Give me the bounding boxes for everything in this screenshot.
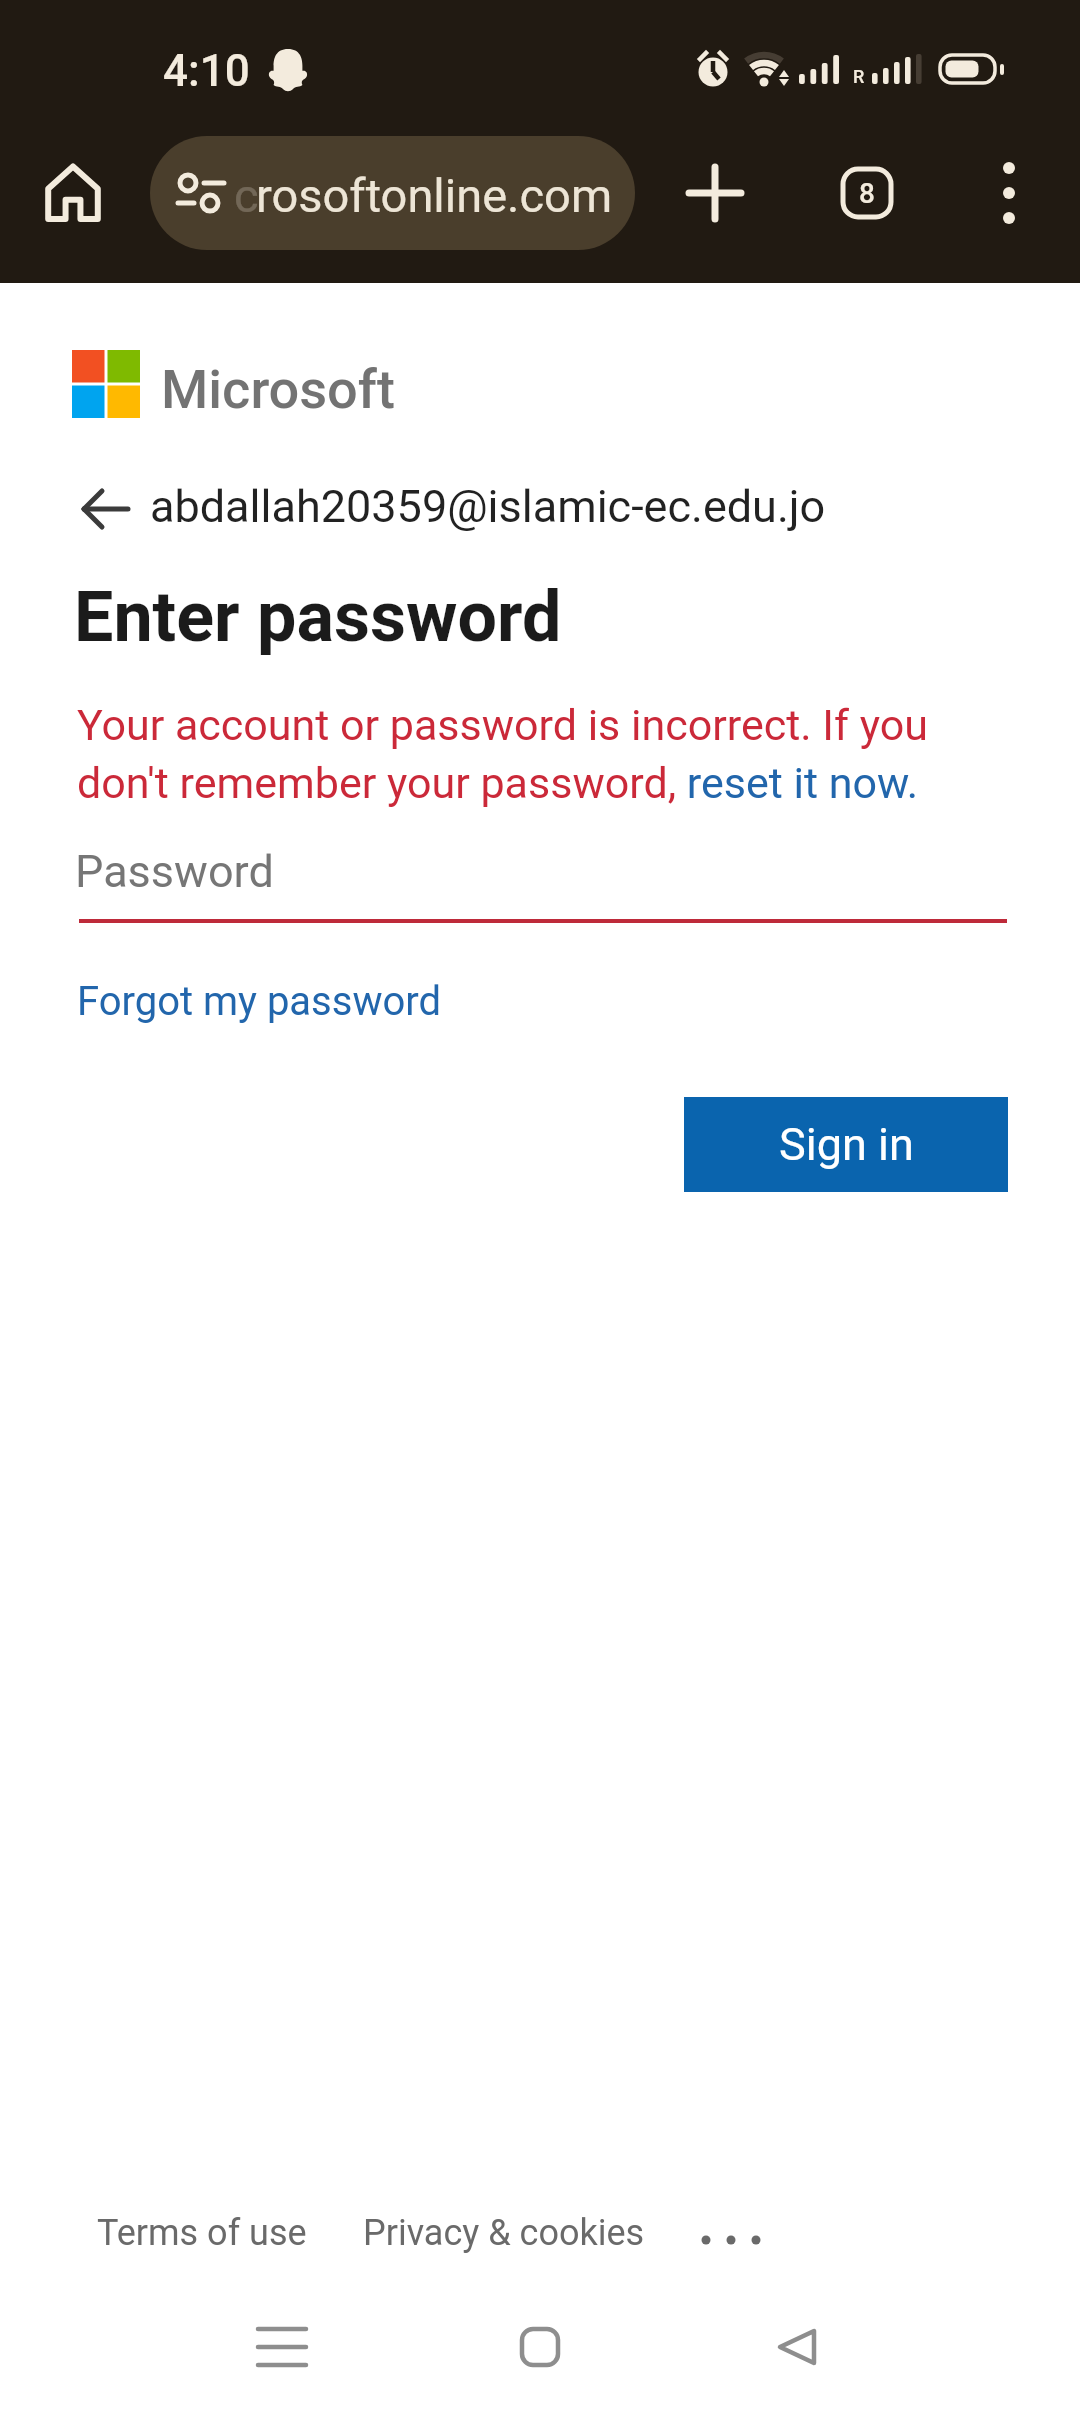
button[interactable]	[42, 160, 104, 224]
button[interactable]	[82, 488, 132, 530]
button[interactable]: Sign in	[684, 1097, 1008, 1192]
button[interactable]	[698, 2222, 764, 2252]
button[interactable]: 8	[840, 166, 894, 220]
staticText: Sign in	[779, 1118, 914, 1171]
staticText: c	[234, 168, 259, 223]
staticText: Forgot my password	[77, 978, 442, 1025]
button[interactable]	[520, 2327, 560, 2367]
staticText: 4:10	[163, 45, 250, 97]
staticText: Terms of use	[97, 2212, 307, 2254]
button[interactable]	[776, 2327, 818, 2367]
button[interactable]: Privacy & cookies	[363, 2212, 645, 2254]
staticText: Enter password	[74, 576, 562, 658]
button[interactable]	[988, 158, 1030, 228]
staticText: R	[853, 66, 865, 87]
staticText: Your account or password is incorrect. I…	[77, 700, 928, 808]
staticText: Microsoft	[161, 358, 395, 421]
staticText: 8	[859, 177, 875, 210]
button[interactable]: Terms of use	[97, 2212, 307, 2254]
button[interactable]	[687, 166, 743, 220]
staticText: abdallah20359@islamic-ec.edu.jo	[150, 480, 826, 533]
staticText: rosoftonline.com	[256, 168, 613, 223]
button[interactable]: Forgot my password	[77, 978, 442, 1025]
button[interactable]: c	[150, 136, 635, 250]
button[interactable]	[258, 2326, 306, 2368]
staticText: Password	[75, 845, 274, 898]
staticText: Privacy & cookies	[363, 2212, 645, 2254]
